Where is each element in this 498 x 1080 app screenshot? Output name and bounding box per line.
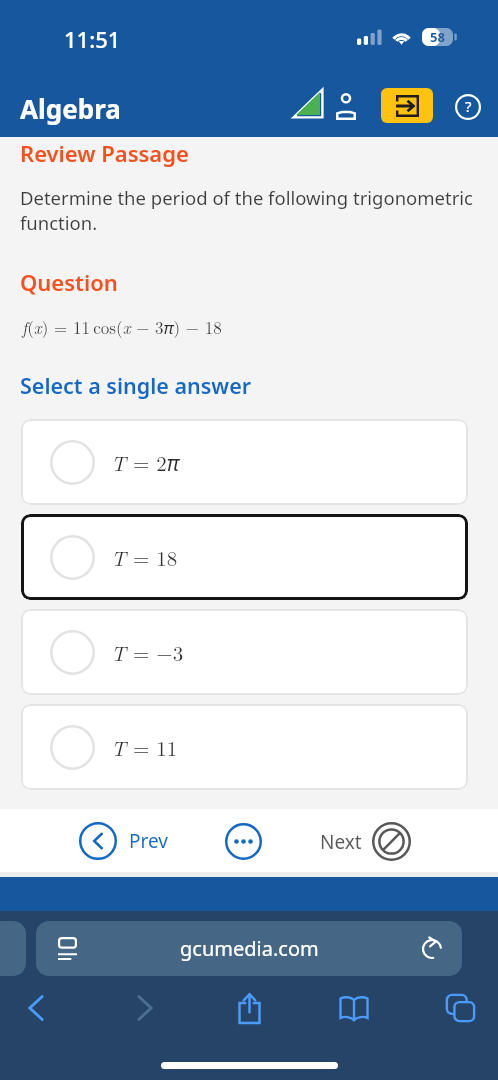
staticText: Question — [20, 267, 118, 297]
button[interactable]: gcumedia.com — [36, 921, 462, 976]
button[interactable]: Toolbar action — [119, 982, 171, 1034]
button[interactable]: Progress — [287, 82, 329, 124]
button[interactable]: Previous tab — [0, 921, 26, 976]
staticText: Review Passage — [20, 138, 189, 168]
button[interactable]: Toolbar action — [223, 982, 275, 1034]
staticText: 58 — [430, 28, 445, 46]
button[interactable]: T = 11 — [21, 704, 468, 790]
staticText: f(x) = 11 cos(x − 3π) − 18 — [22, 315, 222, 339]
staticText: Prev — [129, 828, 168, 854]
button[interactable]: Reload — [416, 933, 448, 965]
button[interactable]: Prev — [79, 822, 168, 860]
button[interactable]: Sign in — [381, 88, 433, 123]
button[interactable]: Account — [326, 84, 366, 124]
staticText: T = 11 — [111, 732, 178, 762]
staticText: Select a single answer — [20, 371, 252, 400]
button[interactable]: Help — [448, 87, 488, 127]
button[interactable]: Next — [320, 822, 411, 861]
button[interactable]: Toolbar action — [328, 982, 380, 1034]
button[interactable]: More options — [224, 822, 262, 860]
button[interactable]: T = −3 — [21, 609, 468, 695]
staticText: Determine the period of the following tr… — [20, 185, 482, 235]
staticText: gcumedia.com — [180, 935, 319, 962]
button[interactable]: Toolbar action — [434, 982, 486, 1034]
button[interactable]: T = 18 — [21, 514, 468, 600]
staticText: Next — [320, 829, 362, 855]
staticText: T = 18 — [111, 542, 178, 572]
staticText: Algebra — [20, 91, 121, 126]
staticText: ? — [465, 96, 472, 116]
staticText: 11:51 — [64, 24, 121, 54]
staticText: T = 2π — [111, 447, 180, 477]
button[interactable]: T = 2π — [21, 419, 468, 505]
button[interactable]: Toolbar action — [10, 982, 62, 1034]
staticText: T = −3 — [111, 637, 184, 667]
